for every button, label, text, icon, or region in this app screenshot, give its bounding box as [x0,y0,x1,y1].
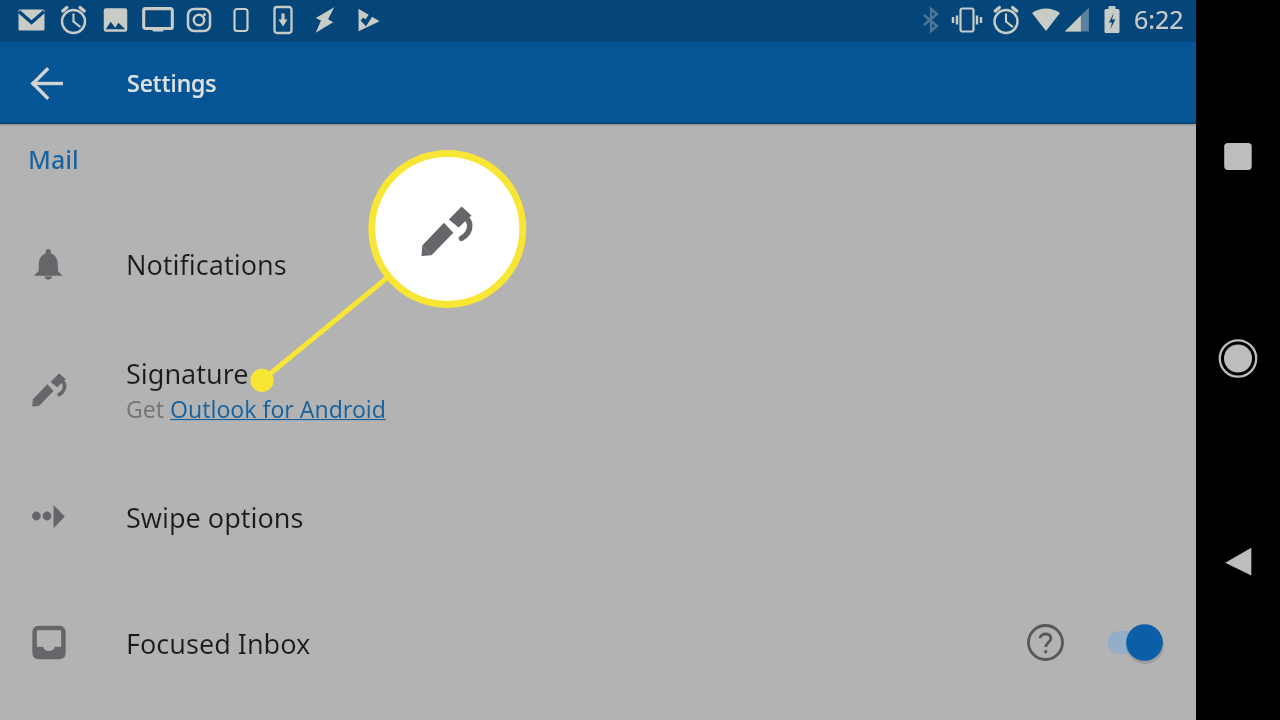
button[interactable]: Home [1196,330,1280,386]
button[interactable] [0,580,1196,706]
staticText: Swipe options [126,499,304,536]
button[interactable] [0,454,1196,580]
button[interactable]: Help [1019,618,1071,670]
staticText: Settings [127,67,217,98]
button[interactable]: Outlook for Android [170,393,386,424]
button[interactable]: Back [14,55,72,113]
button[interactable]: Recent apps [1196,128,1280,184]
staticText: Notifications [126,246,287,283]
button[interactable] [0,328,1196,454]
button[interactable]: Focused Inbox toggle [1092,618,1176,670]
staticText: 6:22 [1134,2,1184,36]
button[interactable]: Back [1196,534,1280,590]
staticText: Get [126,393,170,424]
staticText: Mail [28,142,79,176]
button[interactable] [0,202,1196,328]
staticText: Focused Inbox [126,625,311,662]
staticText: Signature [126,355,249,392]
